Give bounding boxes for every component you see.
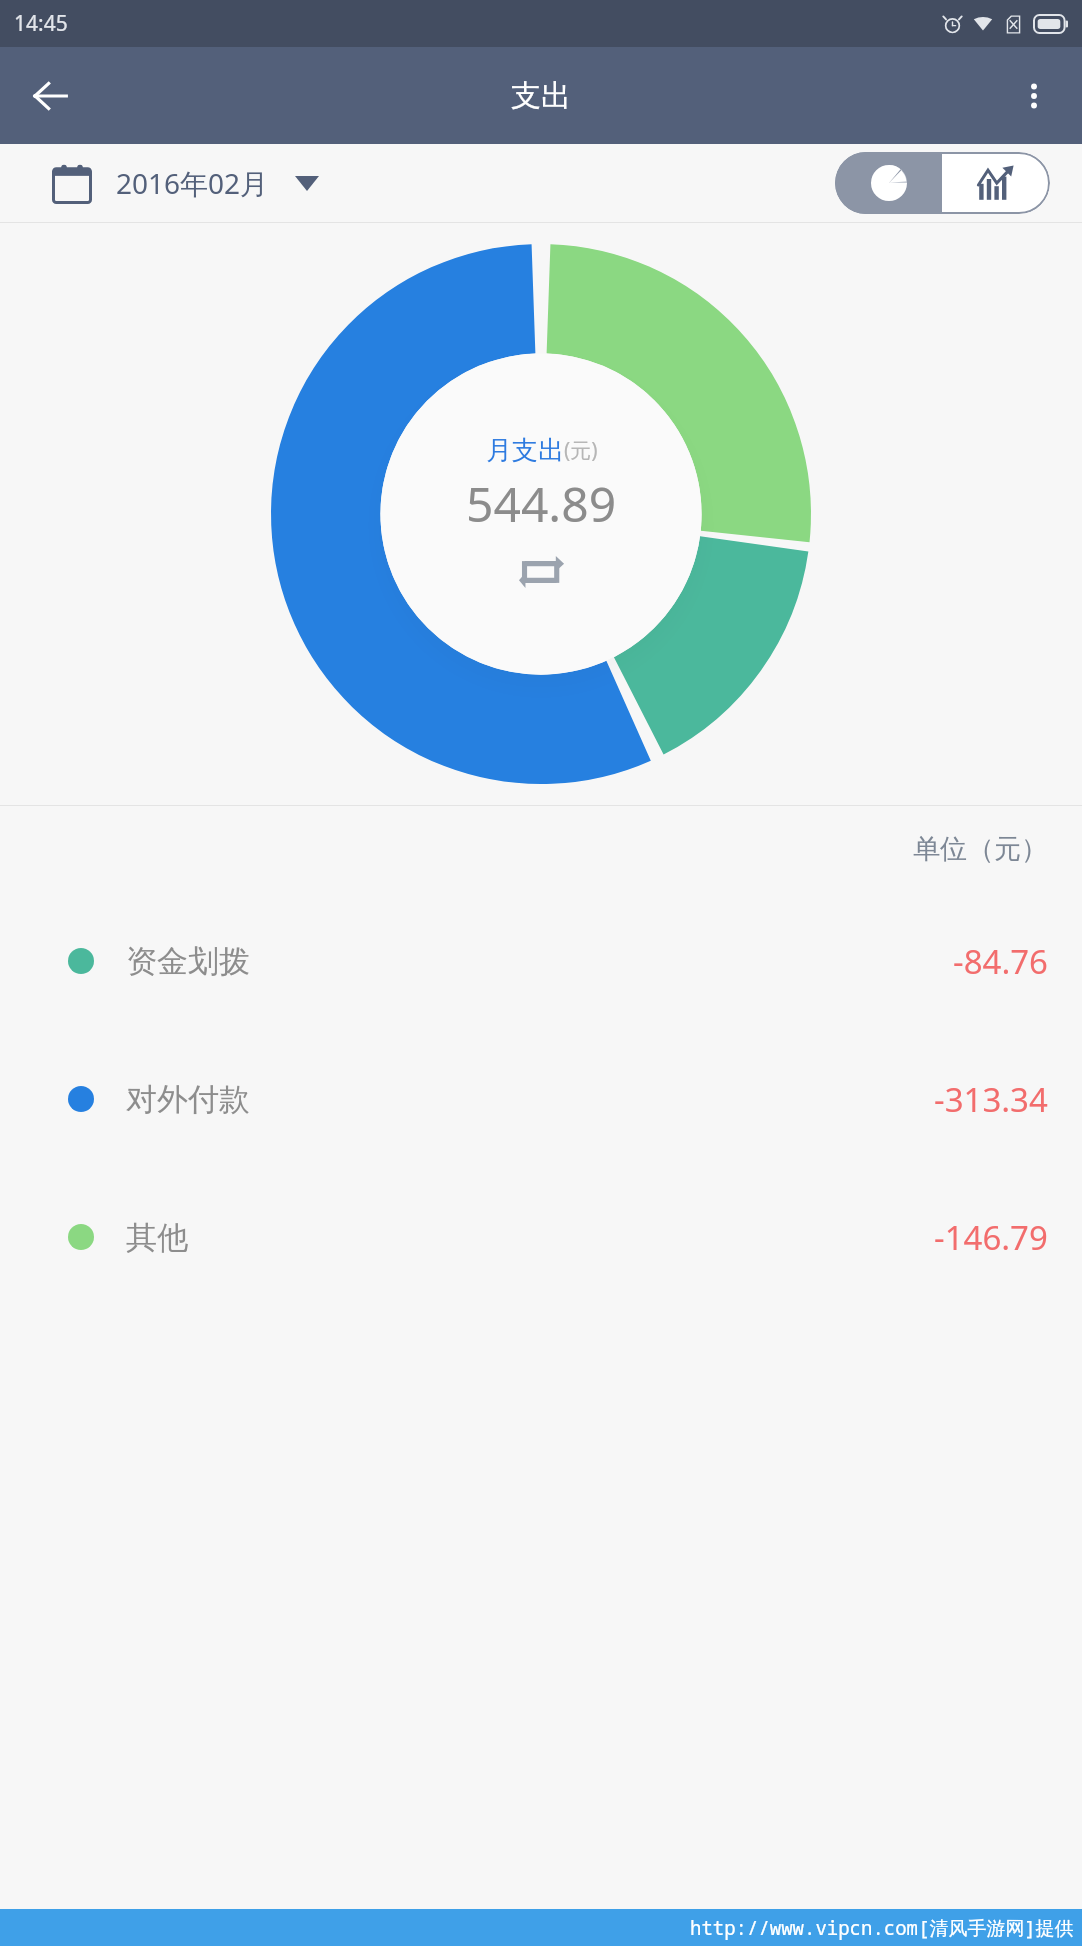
staticText: -84.76 [953,939,1048,984]
staticText: http://www.vipcn.com[清风手游网]提供 [690,1915,1074,1941]
staticText: 其他 [126,1218,188,1257]
button[interactable]: Pie chart view [835,152,942,214]
button[interactable]: Switch currency [515,554,569,590]
staticText: 对外付款 [126,1080,250,1119]
staticText: 支出 [511,77,571,115]
staticText: 单位（元） [913,832,1048,866]
button[interactable]: 2016年02月 [52,162,319,204]
staticText: (元) [564,436,598,465]
button[interactable]: More options [1004,66,1064,126]
staticText: -146.79 [934,1215,1048,1260]
button[interactable]: 对外付款 [0,1030,1082,1168]
staticText: 资金划拨 [126,942,250,981]
staticText: 2016年02月 [116,164,269,202]
staticText: -313.34 [934,1077,1048,1122]
button[interactable]: Trend chart view [942,152,1050,214]
button[interactable]: Back [20,66,80,126]
staticText: 月支出 [486,434,564,467]
staticText: 544.89 [466,471,617,536]
staticText: 14:45 [14,9,68,38]
button[interactable]: 资金划拨 [0,892,1082,1030]
button[interactable]: 其他 [0,1168,1082,1306]
